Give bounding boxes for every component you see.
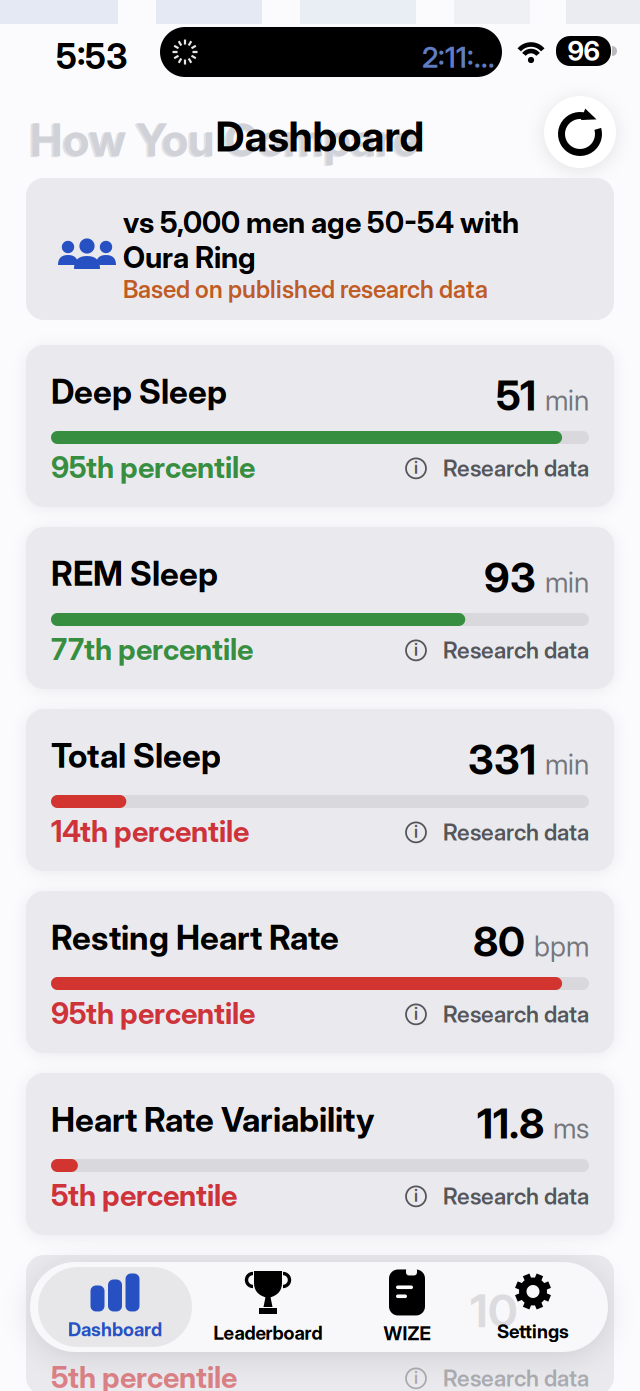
staticText: vs 5,000 men age 50-54 with [123, 205, 519, 240]
staticText: 10 [470, 1284, 517, 1337]
staticText: 5th percentile [51, 1360, 237, 1391]
staticText: Research data [443, 819, 589, 846]
staticText: Research data [443, 637, 589, 664]
button[interactable]: Settings [463, 1267, 603, 1347]
staticText: How You Compare [28, 114, 416, 167]
staticText: 11.8 [477, 1099, 544, 1148]
button[interactable]: i [405, 637, 589, 664]
staticText: 95th percentile [51, 996, 255, 1031]
staticText: i [414, 1367, 418, 1387]
staticText: 96 [567, 35, 599, 67]
staticText: 95th percentile [51, 450, 255, 485]
button[interactable]: Refresh [544, 96, 616, 168]
button[interactable]: i [405, 455, 589, 482]
button[interactable]: i [405, 1365, 589, 1391]
button[interactable]: i [405, 819, 589, 846]
staticText: 77th percentile [51, 632, 253, 667]
staticText: Research data [443, 1001, 589, 1028]
staticText: i [414, 821, 418, 841]
staticText: Leaderboard [213, 1322, 322, 1344]
staticText: 51 [496, 371, 536, 420]
staticText: Research data [443, 455, 589, 482]
staticText: 80 [473, 917, 525, 966]
staticText: Research data [443, 1183, 589, 1210]
staticText: i [414, 1185, 418, 1205]
staticText: Total Sleep [51, 736, 221, 775]
button[interactable]: Leaderboard [183, 1267, 353, 1347]
staticText: Research data [443, 1365, 589, 1391]
staticText: bpm [534, 930, 589, 963]
staticText: Oura Ring [123, 240, 256, 275]
staticText: Dashboard [215, 112, 424, 161]
staticText: 5th percentile [51, 1178, 237, 1213]
staticText: i [414, 457, 418, 477]
staticText: 5:53 [56, 36, 127, 77]
staticText: 93 [484, 553, 536, 602]
staticText: 331 [468, 735, 536, 784]
staticText: 2:11:... [422, 41, 495, 74]
staticText: WIZE [383, 1322, 430, 1344]
staticText: Heart Rate Variability [51, 1100, 374, 1139]
staticText: 14th percentile [51, 814, 249, 849]
staticText: How You Compare [30, 113, 418, 166]
staticText: min [545, 566, 589, 599]
staticText: Dashboard [68, 1318, 162, 1340]
staticText: Resting Heart Rate [51, 918, 339, 957]
button[interactable]: i [405, 1001, 589, 1028]
staticText: REM Sleep [51, 554, 218, 593]
button[interactable]: i [405, 1183, 589, 1210]
staticText: Based on published research data [123, 275, 488, 303]
staticText: ms [553, 1112, 589, 1145]
staticText: min [545, 384, 589, 417]
button[interactable]: WIZE [347, 1267, 467, 1347]
staticText: min [545, 748, 589, 781]
button[interactable]: Dashboard [38, 1267, 192, 1347]
staticText: i [414, 639, 418, 659]
staticText: i [414, 1003, 418, 1023]
staticText: Settings [497, 1320, 569, 1342]
staticText: Deep Sleep [51, 372, 227, 411]
